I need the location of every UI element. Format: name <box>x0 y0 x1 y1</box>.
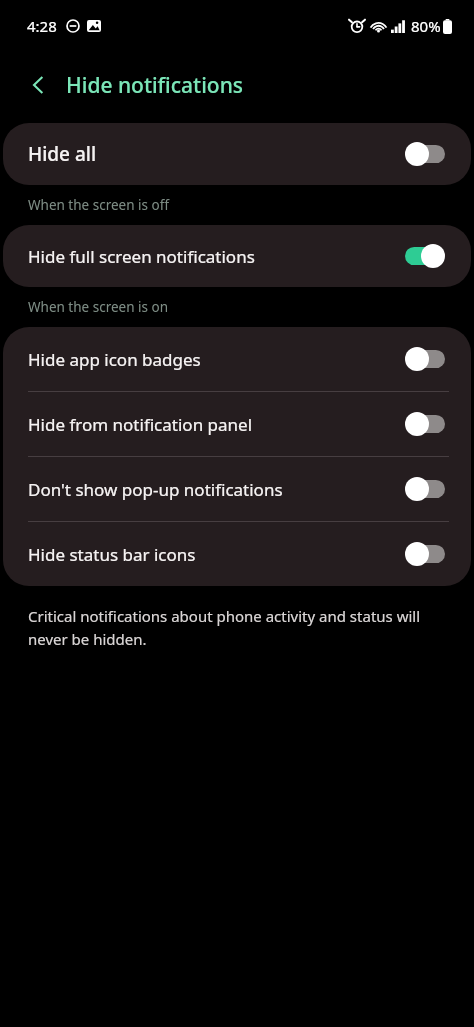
button[interactable]: Back <box>14 61 62 109</box>
staticText: Don't show pop-up notifications <box>28 478 405 501</box>
button[interactable]: Hide full screen notifications <box>3 225 471 287</box>
staticText: Hide notifications <box>66 71 244 100</box>
staticText: 80% <box>411 16 441 36</box>
staticText: Critical notifications about phone activ… <box>28 606 446 649</box>
button[interactable]: Toggle off <box>405 477 445 501</box>
staticText: Hide all <box>28 141 405 167</box>
button[interactable]: Toggle off <box>405 347 445 371</box>
button[interactable]: Toggle off <box>405 542 445 566</box>
staticText: Hide app icon badges <box>28 348 405 371</box>
staticText: When the screen is off <box>28 196 169 214</box>
button[interactable]: Hide status bar icons <box>3 522 471 586</box>
button[interactable]: Hide all <box>3 123 471 185</box>
staticText: 4:28 <box>27 16 57 36</box>
button[interactable]: Toggle off <box>405 412 445 436</box>
staticText: Hide status bar icons <box>28 543 405 566</box>
button[interactable]: Hide app icon badges <box>3 327 471 391</box>
button[interactable]: Hide from notification panel <box>3 392 471 456</box>
button[interactable]: Don't show pop-up notifications <box>3 457 471 521</box>
button[interactable]: Toggle off <box>405 142 445 166</box>
staticText: Hide from notification panel <box>28 413 405 436</box>
staticText: Hide full screen notifications <box>28 245 405 268</box>
staticText: When the screen is on <box>28 298 169 316</box>
button[interactable]: Toggle on <box>405 244 445 268</box>
